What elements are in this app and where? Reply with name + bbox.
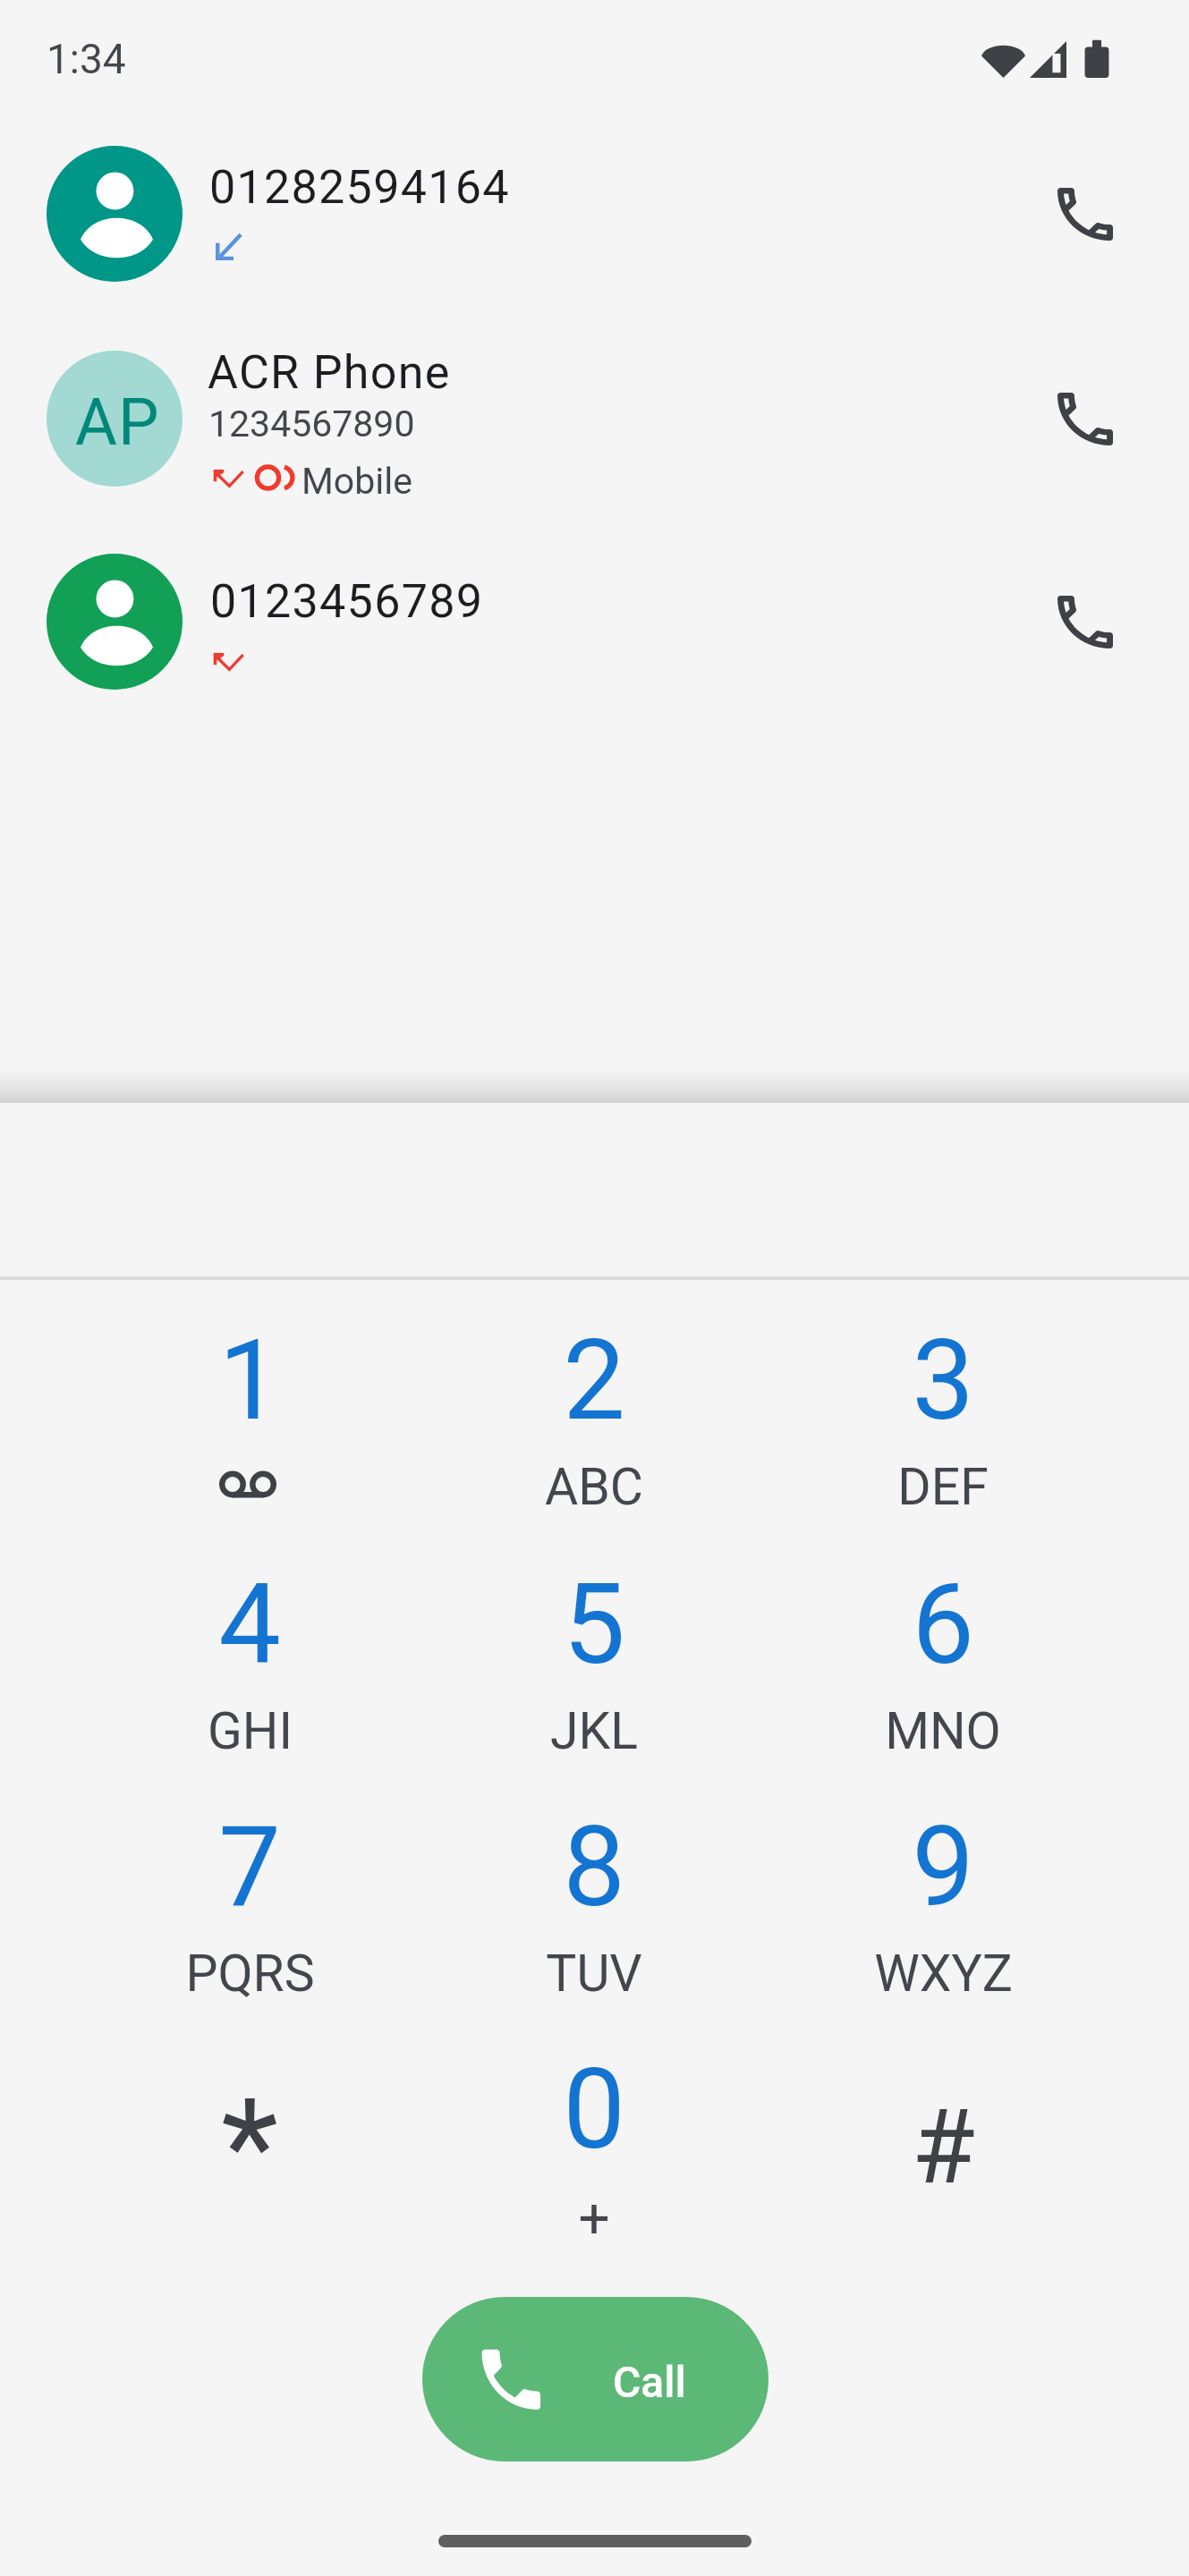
button[interactable]: 4	[76, 1521, 420, 1758]
staticText: 1	[218, 1316, 281, 1445]
button[interactable]: 7	[76, 1763, 420, 2000]
staticText: GHI	[208, 1701, 293, 1761]
button[interactable]: 9	[769, 1763, 1113, 2000]
button[interactable]: 1	[76, 1276, 420, 1513]
staticText: 1:34	[47, 35, 126, 83]
staticText: Mobile	[301, 460, 412, 503]
button[interactable]: 01282594164	[0, 112, 1189, 316]
staticText: 9	[912, 1802, 974, 1932]
staticText: ABC	[545, 1457, 643, 1517]
button[interactable]: Call	[1014, 142, 1157, 285]
button[interactable]: Call	[1014, 347, 1157, 490]
staticText: *	[221, 2071, 278, 2225]
staticText: JKL	[550, 1701, 638, 1761]
staticText: ACR Phone	[208, 345, 451, 400]
staticText: 7	[218, 1802, 281, 1932]
button[interactable]: 5	[420, 1521, 764, 1758]
button[interactable]: 8	[420, 1763, 764, 2000]
staticText: WXYZ	[874, 1944, 1013, 2004]
staticText: 2	[563, 1316, 625, 1445]
button[interactable]: 2	[420, 1276, 764, 1513]
staticText: DEF	[897, 1457, 989, 1517]
staticText: 3	[912, 1316, 974, 1445]
staticText: 6	[912, 1560, 974, 1690]
staticText: 1234567890	[208, 402, 415, 445]
staticText: AP	[75, 385, 160, 460]
button[interactable]: Call	[1014, 550, 1157, 693]
button[interactable]: *	[76, 2005, 420, 2242]
staticText: MNO	[885, 1701, 1001, 1761]
staticText: 4	[218, 1560, 281, 1690]
button[interactable]: AP	[0, 317, 1189, 521]
staticText: 01282594164	[209, 160, 510, 215]
staticText: TUV	[546, 1944, 642, 2004]
staticText: +	[578, 2185, 610, 2250]
button[interactable]: Call	[422, 2297, 769, 2462]
staticText: 5	[563, 1560, 625, 1690]
button[interactable]: 6	[769, 1521, 1113, 1758]
other: Voicemail	[219, 1470, 276, 1498]
staticText: 8	[563, 1802, 625, 1932]
button[interactable]: 3	[769, 1276, 1113, 1513]
button[interactable]: 0123456789	[0, 520, 1189, 724]
staticText: #	[912, 2087, 975, 2207]
staticText: 0123456789	[210, 574, 484, 629]
staticText: 0	[563, 2045, 625, 2174]
staticText: PQRS	[185, 1944, 315, 2004]
button[interactable]: 0	[420, 2005, 764, 2242]
staticText: Call	[613, 2357, 686, 2407]
button[interactable]: #	[769, 2005, 1113, 2242]
